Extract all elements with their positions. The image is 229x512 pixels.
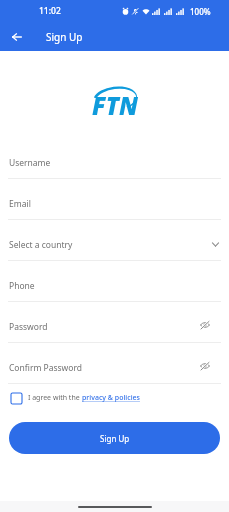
- button[interactable]: Email: [0, 179, 229, 220]
- staticText: Username: [9, 157, 51, 169]
- staticText: FTN: [92, 89, 138, 119]
- button[interactable]: Back: [5, 25, 29, 49]
- staticText: Email: [9, 198, 31, 210]
- button[interactable]: Agree to privacy policy: [9, 391, 23, 405]
- staticText: 100%: [190, 6, 211, 17]
- staticText: 11:02: [39, 5, 61, 17]
- staticText: Password: [9, 321, 48, 333]
- staticText: Sign Up: [100, 433, 130, 444]
- staticText: I agree with the: [28, 393, 82, 403]
- button[interactable]: Phone: [0, 261, 229, 302]
- button[interactable]: Sign Up: [9, 422, 220, 454]
- staticText: Confirm Password: [9, 362, 82, 374]
- button[interactable]: Confirm Password: [0, 343, 229, 384]
- button[interactable]: Open country list: [208, 237, 222, 251]
- button[interactable]: Password: [0, 302, 229, 343]
- staticText: Select a country: [9, 239, 73, 251]
- staticText: Sign Up: [46, 30, 83, 44]
- button[interactable]: privacy & policies: [82, 393, 140, 403]
- button[interactable]: Toggle password visibility: [198, 359, 212, 373]
- button[interactable]: Select a country: [0, 220, 229, 261]
- button[interactable]: Username: [0, 138, 229, 179]
- button[interactable]: Toggle password visibility: [198, 318, 212, 332]
- staticText: Phone: [9, 280, 35, 292]
